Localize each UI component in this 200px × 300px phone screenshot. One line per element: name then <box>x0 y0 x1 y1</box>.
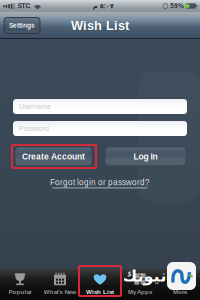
staticText: ٥:٠٧ م <box>92 2 113 10</box>
staticText: Forgot login or password? <box>50 178 150 187</box>
staticText: Wish List <box>86 288 114 295</box>
staticText: Password <box>19 125 49 132</box>
button[interactable]: My Apps <box>120 269 160 300</box>
button[interactable]: Wish List <box>80 269 120 300</box>
staticText: نيوتك <box>122 267 166 285</box>
staticText: Popular <box>8 288 31 295</box>
staticText: Settings <box>9 22 35 29</box>
button[interactable]: Forgot login or password? <box>50 178 150 188</box>
staticText: Log In <box>133 152 157 161</box>
button[interactable]: Settings <box>4 17 40 33</box>
button[interactable]: What's New <box>40 269 80 300</box>
button[interactable]: More <box>160 269 200 300</box>
staticText: What's New <box>43 288 76 295</box>
button[interactable]: Popular <box>0 269 40 300</box>
staticText: Create Account <box>22 152 85 161</box>
button[interactable]: Log In <box>105 147 186 166</box>
staticText: More <box>173 288 187 295</box>
staticText: 59% <box>170 2 184 10</box>
staticText: STC <box>17 2 30 10</box>
staticText: Wish List <box>71 18 129 33</box>
staticText: My Apps <box>128 288 152 295</box>
staticText: Username <box>19 103 51 110</box>
button[interactable]: Create Account <box>15 147 92 166</box>
